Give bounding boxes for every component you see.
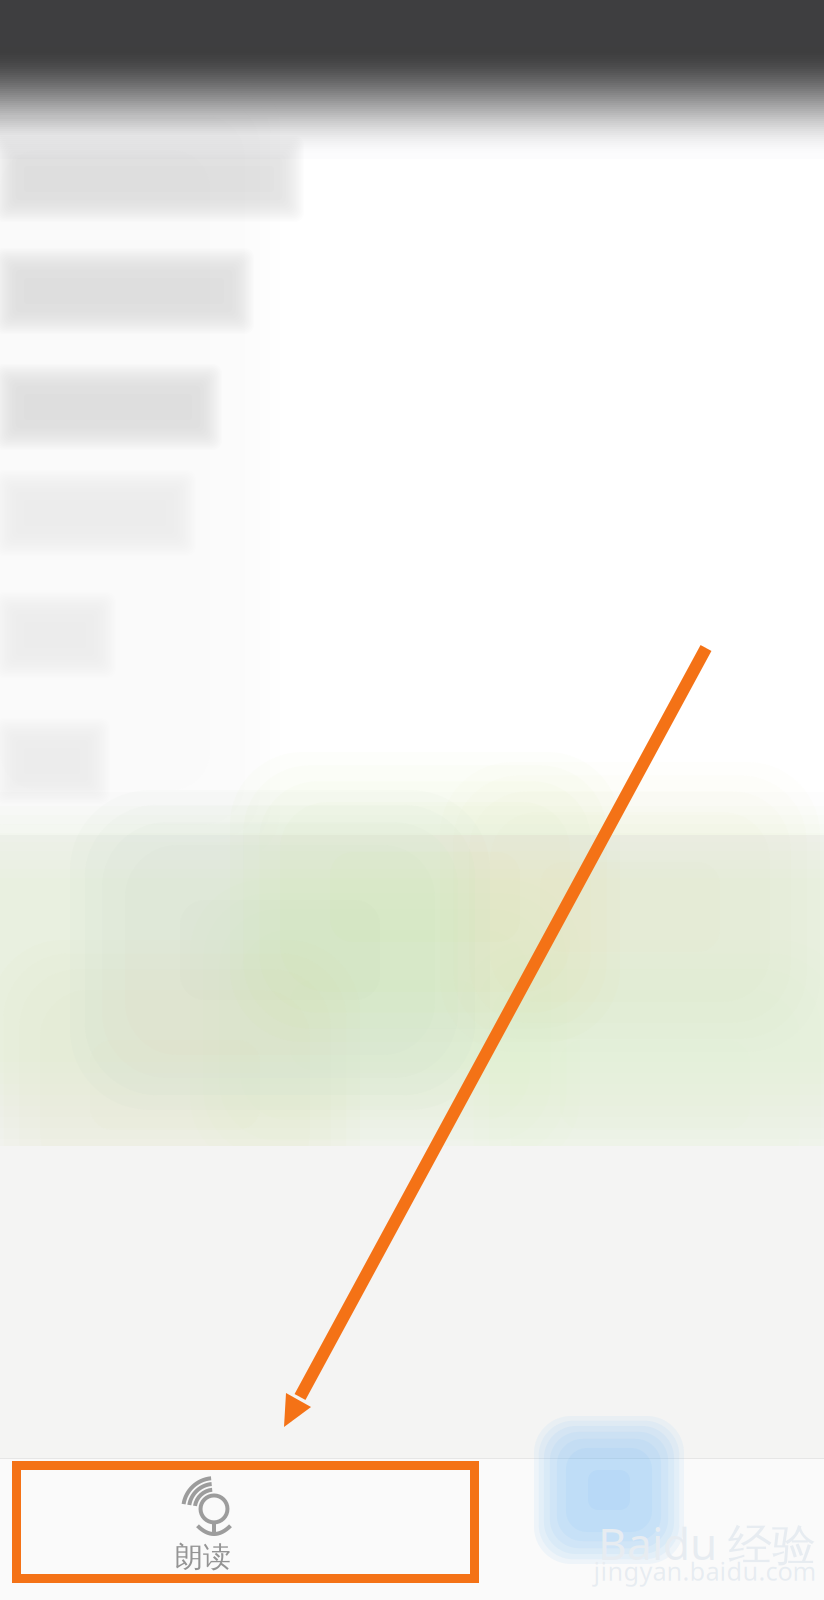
button[interactable]: 朗读 — [12, 1470, 461, 1574]
staticText: 朗读 — [175, 1540, 231, 1574]
staticText: jingyan.baidu.com — [593, 1554, 816, 1588]
staticText: Baidu 经验 — [598, 1514, 816, 1572]
